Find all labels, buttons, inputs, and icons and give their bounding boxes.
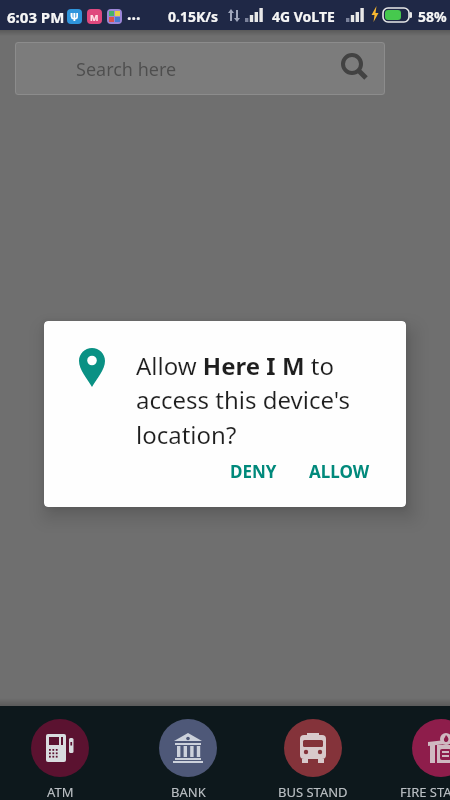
staticText: BUS STAND (278, 783, 348, 800)
staticText: 0.15K/s (168, 7, 219, 26)
button[interactable]: DENY (222, 454, 285, 489)
button[interactable]: BANK (124, 719, 252, 800)
button[interactable]: FIRE STATION (377, 719, 450, 800)
button[interactable]: BUS STAND (249, 719, 377, 800)
button[interactable]: Search here (15, 42, 385, 95)
staticText: 4G VoLTE (272, 7, 335, 26)
button[interactable]: ATM (0, 719, 124, 800)
staticText: Search here (76, 57, 177, 82)
staticText: DENY (230, 460, 277, 483)
staticText: ... (127, 3, 141, 25)
staticText: Ψ (70, 10, 79, 24)
staticText: 6:03 PM (7, 7, 65, 27)
staticText: M (90, 11, 99, 23)
staticText: 58% (418, 7, 447, 26)
button[interactable]: ALLOW (301, 454, 378, 489)
staticText: ALLOW (309, 460, 370, 483)
staticText: ATM (47, 783, 74, 800)
staticText: BANK (171, 783, 206, 800)
staticText: Allow Here I M to access this device's l… (136, 349, 386, 452)
staticText: FIRE STATION (400, 783, 450, 800)
